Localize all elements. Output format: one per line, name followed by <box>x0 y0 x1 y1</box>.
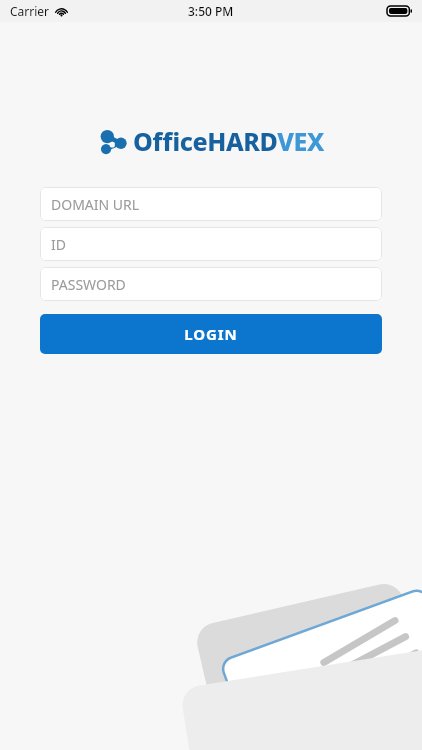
button[interactable]: PASSWORD <box>40 267 382 301</box>
staticText: 3:50 PM <box>188 3 234 19</box>
staticText: ID <box>51 235 66 254</box>
button[interactable]: DOMAIN URL <box>40 187 382 221</box>
button[interactable]: ID <box>40 227 382 261</box>
staticText: Carrier <box>10 3 50 19</box>
staticText: OfficeHARDVEX <box>133 124 325 158</box>
button[interactable]: LOGIN <box>40 314 382 354</box>
staticText: DOMAIN URL <box>51 195 140 214</box>
staticText: LOGIN <box>184 324 238 344</box>
other: OfficeHARDVEX logo <box>98 127 129 156</box>
staticText: PASSWORD <box>51 275 126 294</box>
